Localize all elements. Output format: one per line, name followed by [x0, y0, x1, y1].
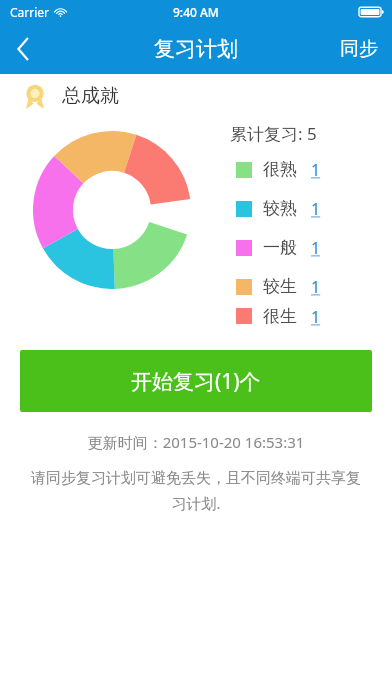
staticText: 累计复习: 5	[230, 122, 317, 145]
staticText: 一般	[263, 237, 297, 258]
button[interactable]: 较熟	[208, 189, 392, 228]
staticText: 同步	[340, 37, 378, 61]
staticText: Carrier	[10, 4, 50, 20]
staticText: 1	[311, 159, 321, 181]
staticText: 复习计划	[154, 36, 238, 62]
button[interactable]: 较生	[208, 267, 392, 306]
staticText: 请同步复习计划可避免丢失，且不同终端可共享复习计划.	[26, 469, 366, 513]
staticText: 1	[311, 198, 321, 220]
button[interactable]: 很熟	[208, 150, 392, 189]
staticText: 9:40 AM	[173, 4, 219, 20]
button[interactable]: 同步	[326, 24, 392, 74]
staticText: 很熟	[263, 159, 297, 180]
staticText: 较熟	[263, 198, 297, 219]
button[interactable]: 很生	[208, 306, 392, 326]
button[interactable]: Back	[0, 24, 48, 74]
staticText: 1	[311, 276, 321, 298]
button[interactable]: 一般	[208, 228, 392, 267]
staticText: 总成就	[62, 84, 119, 108]
staticText: 更新时间：2015-10-20 16:53:31	[0, 432, 392, 452]
staticText: 很生	[263, 306, 297, 326]
staticText: 开始复习(1)个	[131, 367, 261, 396]
staticText: 较生	[263, 276, 297, 297]
staticText: 1	[311, 306, 321, 326]
button[interactable]: 开始复习(1)个	[20, 350, 372, 412]
staticText: 1	[311, 237, 321, 259]
